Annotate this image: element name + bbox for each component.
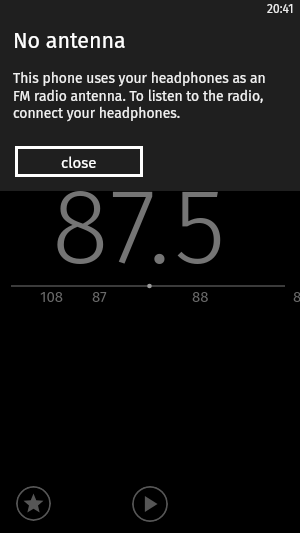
button[interactable]: close	[15, 146, 143, 177]
staticText: 8	[293, 288, 300, 306]
staticText: close	[61, 154, 97, 172]
staticText: 20:41	[267, 2, 294, 16]
staticText: 87.5	[0, 164, 290, 291]
button[interactable]: Play	[132, 486, 168, 522]
staticText: This phone uses your headphones as an FM…	[13, 70, 275, 121]
button[interactable]: Add to favourites	[16, 486, 51, 521]
staticText: 108	[40, 288, 64, 306]
staticText: 87	[92, 288, 107, 306]
staticText: 88	[192, 288, 209, 306]
staticText: No antenna	[13, 28, 126, 54]
